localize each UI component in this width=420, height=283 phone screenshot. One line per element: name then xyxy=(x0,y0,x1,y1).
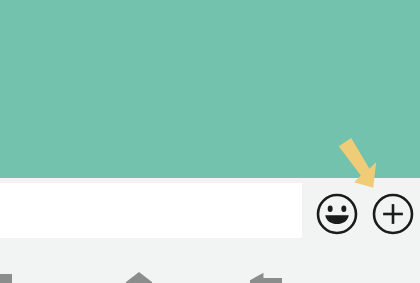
button[interactable]: Home xyxy=(126,272,152,283)
button[interactable]: Add attachment xyxy=(369,190,417,238)
button[interactable]: Emoji xyxy=(313,190,361,238)
button[interactable]: Back xyxy=(250,272,282,283)
